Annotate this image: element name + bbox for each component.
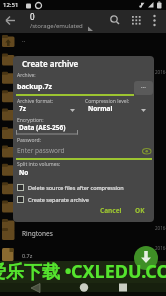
staticText: backup.7z [17, 82, 52, 92]
staticText: 2016- [155, 245, 166, 251]
button[interactable]: ... [134, 81, 153, 95]
button[interactable] [115, 281, 131, 294]
button[interactable] [129, 12, 145, 30]
staticText: 0 [30, 11, 35, 22]
staticText: Password: [17, 137, 41, 144]
staticText: OK [135, 206, 145, 215]
staticText: Delete source files after compression [28, 184, 124, 191]
staticText: Enter password [17, 146, 65, 155]
staticText: Encryption: [17, 117, 44, 124]
button[interactable]: Normal [85, 104, 147, 116]
staticText: 2016- [155, 225, 166, 231]
staticText: Data (AES-256) [19, 123, 66, 132]
button[interactable]: Cancel [95, 203, 127, 217]
staticText: Archive format: [17, 98, 54, 105]
staticText: /storage/emulated [30, 22, 83, 30]
staticText: Split into volumes: [17, 161, 61, 168]
staticText: Cancel [100, 206, 122, 215]
staticText: 0.7z [22, 252, 33, 259]
button[interactable]: Ringtones [0, 226, 166, 246]
staticText: Normal [88, 104, 113, 113]
button[interactable]: Data (AES-256) [16, 123, 78, 135]
staticText: No [19, 168, 29, 177]
button[interactable] [141, 147, 153, 156]
button[interactable]: 7z [16, 104, 78, 116]
staticText: 12:51 [3, 1, 19, 9]
button[interactable] [107, 12, 123, 30]
staticText: ... [141, 82, 146, 90]
staticText: Compression level: [85, 98, 130, 105]
button[interactable] [76, 281, 92, 294]
button[interactable]: No [16, 168, 78, 180]
staticText: 爱乐下载 • [0, 259, 72, 284]
button[interactable] [2, 13, 22, 31]
staticText: Archive: [17, 72, 36, 79]
button[interactable] [134, 246, 158, 270]
button[interactable]: OK [129, 203, 151, 217]
staticText: 2016- [155, 69, 166, 75]
button[interactable] [148, 12, 162, 30]
button[interactable]: Create separate archive [17, 194, 89, 204]
staticText: .. [22, 36, 26, 44]
staticText: Create archive [22, 58, 79, 69]
staticText: Create separate archive [28, 196, 89, 203]
staticText: 7z [19, 104, 26, 113]
button[interactable] [0, 261, 166, 296]
button[interactable]: Delete source files after compression [17, 182, 124, 192]
staticText: Ringtones [22, 229, 53, 238]
staticText: CXLEDU.COM [71, 259, 166, 284]
button[interactable] [26, 282, 46, 294]
